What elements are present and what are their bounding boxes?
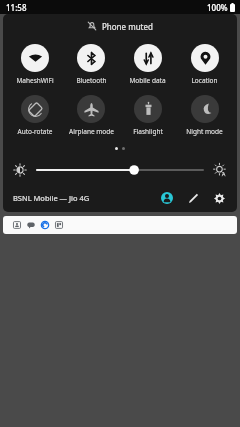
button[interactable]: Location	[176, 44, 233, 85]
staticText: Bluetooth	[76, 76, 107, 85]
button[interactable]: Night mode	[176, 95, 233, 136]
button[interactable]: Mobile data	[119, 44, 176, 85]
staticText: Auto-rotate	[17, 127, 53, 136]
staticText: Flashlight	[133, 127, 163, 136]
button[interactable]: Auto brightness	[213, 163, 227, 177]
button[interactable]	[3, 216, 237, 234]
staticText: Night mode	[186, 127, 223, 136]
staticText: Location	[191, 76, 218, 85]
button[interactable]: Airplane mode	[63, 95, 119, 136]
button[interactable]: Lower brightness	[13, 163, 27, 177]
button[interactable]	[37, 162, 203, 178]
staticText: 11:58	[6, 2, 27, 13]
button[interactable]: Flashlight	[119, 95, 176, 136]
staticText: 100%	[207, 2, 228, 13]
staticText: Airplane mode	[69, 127, 114, 136]
staticText: MaheshWiFi	[16, 76, 54, 85]
button[interactable]: MaheshWiFi	[7, 44, 63, 85]
button[interactable]: Edit	[183, 188, 203, 208]
button[interactable]: Settings	[209, 188, 229, 208]
staticText: Mobile data	[129, 76, 166, 85]
button[interactable]: BSNL Mobile — Jio 4G	[13, 193, 90, 203]
button[interactable]: Phone muted	[3, 14, 237, 38]
staticText: Phone muted	[102, 21, 153, 32]
button[interactable]: Auto-rotate	[7, 95, 63, 136]
button[interactable]: User	[157, 188, 177, 208]
button[interactable]: Bluetooth	[63, 44, 119, 85]
